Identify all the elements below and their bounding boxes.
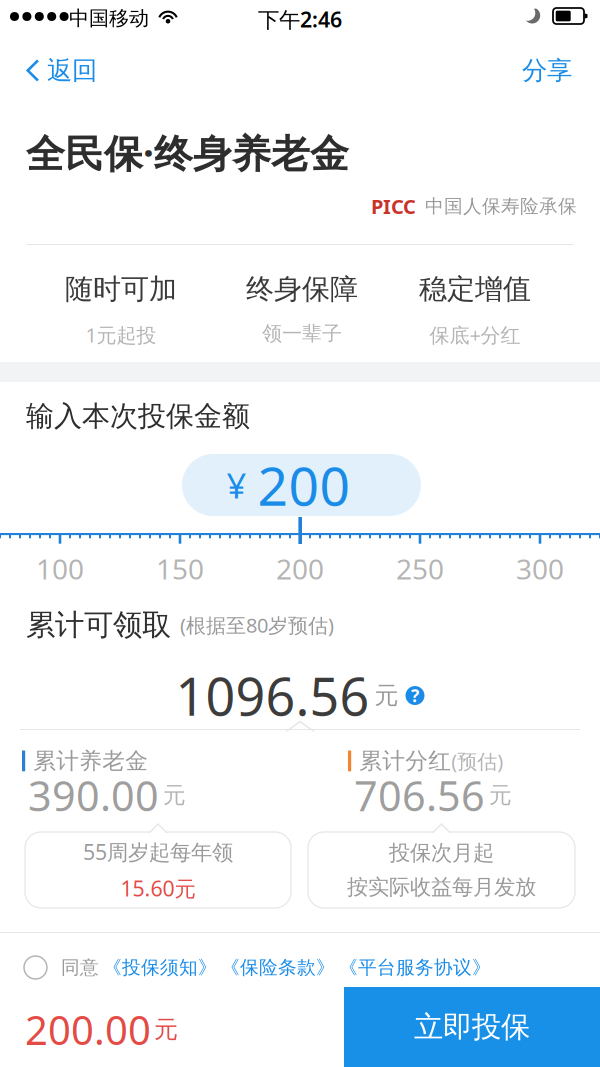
button[interactable]: 同意 (24, 951, 491, 984)
staticText: 150 (156, 550, 204, 587)
staticText: 元 (374, 681, 398, 710)
staticText: 随时可加 (65, 272, 177, 306)
staticText: 1元起投 (85, 321, 156, 348)
staticText: 《投保须知》 (103, 956, 217, 979)
staticText: 1096.56 (175, 661, 369, 730)
staticText: 投保次月起 (389, 840, 494, 866)
staticText: 立即投保 (414, 1009, 530, 1045)
staticText: 250 (396, 550, 444, 587)
staticText: 中国人保寿险承保 (425, 195, 577, 218)
staticText: 稳定增值 (419, 272, 531, 306)
staticText: 200 (257, 450, 350, 520)
staticText: 返回 (47, 55, 97, 86)
staticText: 按实际收益每月发放 (347, 874, 536, 900)
button[interactable]: 说明 (398, 686, 424, 705)
staticText: 《保险条款》 (221, 956, 335, 979)
staticText: 累计分红 (359, 747, 451, 775)
staticText: 元 (163, 781, 186, 809)
staticText: ¥ (226, 462, 246, 508)
staticText: 下午2:46 (258, 5, 342, 33)
staticText: 15.60元 (120, 874, 195, 902)
staticText: 55周岁起每年领 (83, 838, 233, 866)
staticText: 领一辈子 (262, 321, 342, 346)
staticText: ? (411, 684, 419, 707)
staticText: 累计可领取 (26, 607, 171, 643)
staticText: 706.56 (354, 768, 485, 823)
staticText: (预估) (451, 748, 503, 774)
staticText: 元 (489, 781, 512, 809)
button[interactable]: 立即投保 (344, 987, 600, 1067)
staticText: 390.00 (28, 768, 159, 823)
staticText: 同意 (61, 956, 99, 979)
staticText: 终身保障 (246, 272, 358, 306)
staticText: 全民保·终身养老金 (26, 127, 349, 178)
staticText: 分享 (522, 55, 572, 86)
staticText: 中国移动 (69, 6, 149, 31)
staticText: 累计养老金 (33, 747, 148, 775)
staticText: 《平台服务协议》 (339, 956, 491, 979)
staticText: 保底+分红 (429, 321, 520, 348)
staticText: 输入本次投保金额 (26, 399, 250, 433)
button[interactable]: 分享 (510, 47, 584, 94)
staticText: 200.00 (25, 1003, 151, 1056)
staticText: 200 (276, 550, 324, 587)
button[interactable]: 返回 (18, 47, 104, 94)
staticText: 300 (516, 550, 564, 587)
staticText: PICC (371, 193, 416, 220)
staticText: 元 (154, 1015, 178, 1044)
staticText: 100 (36, 550, 84, 587)
staticText: (根据至80岁预估) (180, 612, 334, 638)
